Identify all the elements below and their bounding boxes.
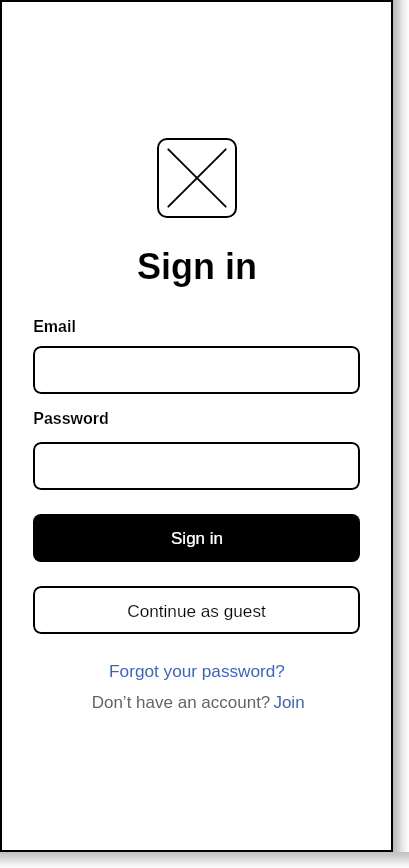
button[interactable]: Forgot your password? (109, 661, 285, 680)
staticText: Continue as guest (127, 601, 266, 620)
staticText: Sign in (171, 529, 223, 548)
staticText: Sign in (137, 246, 257, 286)
button[interactable]: Email input field (33, 346, 360, 394)
staticText: Password (33, 410, 109, 428)
button[interactable]: Join (273, 693, 305, 712)
button[interactable]: Continue as guest (33, 586, 360, 634)
button[interactable]: Sign in (33, 514, 360, 562)
button[interactable]: Password input field (33, 442, 360, 490)
staticText: Don’t have an account? (89, 693, 273, 712)
other: App logo (157, 138, 237, 218)
staticText: Join (273, 693, 305, 712)
staticText: Forgot your password? (109, 661, 285, 680)
staticText: Email (33, 318, 76, 336)
